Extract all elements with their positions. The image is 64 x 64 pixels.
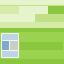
button[interactable]	[0, 0, 64, 6]
button[interactable]	[1, 33, 19, 58]
